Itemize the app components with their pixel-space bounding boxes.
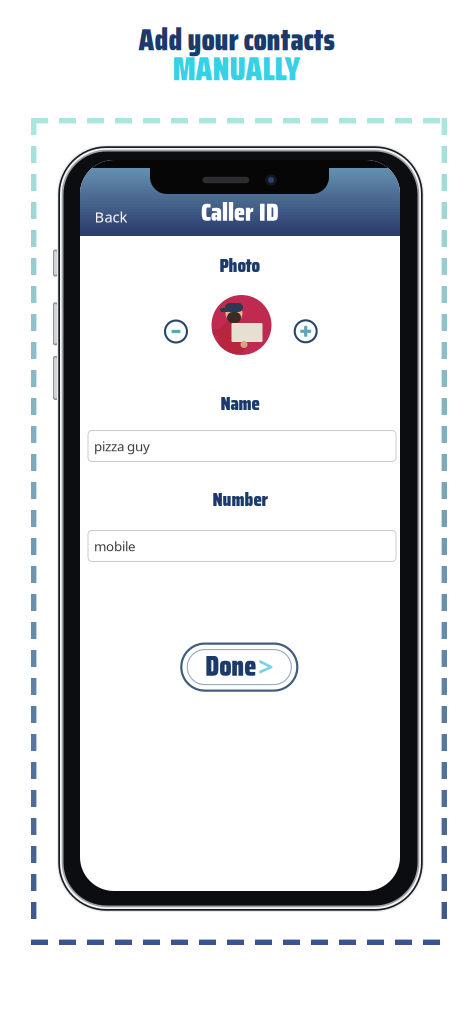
staticText: Number: [212, 484, 267, 514]
staticText: Add your contacts: [138, 16, 334, 63]
staticText: pizza guy: [94, 437, 150, 455]
staticText: MANUALLY: [172, 44, 300, 94]
button[interactable]: Back: [86, 200, 135, 233]
staticText: Name: [220, 388, 259, 418]
staticText: Back: [94, 207, 127, 226]
staticText: Photo: [219, 250, 260, 280]
button[interactable]: Remove photo: [165, 320, 187, 342]
button[interactable]: pizza guy: [88, 430, 396, 461]
staticText: >: [258, 648, 273, 684]
button[interactable]: Add photo: [295, 320, 317, 342]
staticText: mobile: [94, 537, 136, 555]
button[interactable]: mobile: [88, 530, 396, 561]
button[interactable]: Done: [181, 644, 297, 691]
staticText: Done: [205, 644, 256, 688]
staticText: Caller ID: [201, 192, 279, 232]
